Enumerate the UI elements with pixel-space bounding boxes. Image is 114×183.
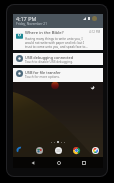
staticText: 4:12 PM <box>89 30 101 34</box>
button[interactable]: USB debugging connected <box>13 53 103 65</box>
button[interactable]: Recents <box>78 157 89 168</box>
staticText: USB for file transfer <box>25 70 61 75</box>
button[interactable]: Camera <box>34 145 45 156</box>
button[interactable]: Phone <box>15 145 26 156</box>
button[interactable]: Chrome <box>71 145 82 156</box>
staticText: Touch to disable USB debugging. <box>25 60 73 64</box>
staticText: Friday, November 21 <box>16 22 47 26</box>
button[interactable]: Search <box>53 145 64 156</box>
staticText: Where in the Bible? <box>25 30 64 36</box>
staticText: Touch for more options. <box>25 75 60 79</box>
button[interactable]: Back <box>27 157 38 168</box>
button[interactable]: Home <box>53 157 64 168</box>
staticText: Having many things to write unto you, I … <box>25 37 88 49</box>
button[interactable]: Settings <box>92 16 97 21</box>
button[interactable]: Where in the Bible? <box>13 28 103 50</box>
staticText: 4:17 PM <box>16 15 37 22</box>
button[interactable]: Google <box>90 145 101 156</box>
button[interactable]: USB for file transfer <box>13 68 103 82</box>
staticText: USB debugging connected <box>25 55 74 60</box>
